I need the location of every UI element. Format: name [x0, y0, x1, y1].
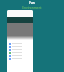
button[interactable] — [7, 45, 33, 48]
staticText: Fun — [29, 1, 35, 5]
button[interactable] — [7, 51, 33, 54]
button[interactable] — [7, 48, 33, 51]
staticText: Environment — [22, 6, 42, 10]
button[interactable] — [7, 42, 33, 45]
button[interactable] — [7, 54, 33, 57]
button[interactable] — [7, 57, 33, 60]
